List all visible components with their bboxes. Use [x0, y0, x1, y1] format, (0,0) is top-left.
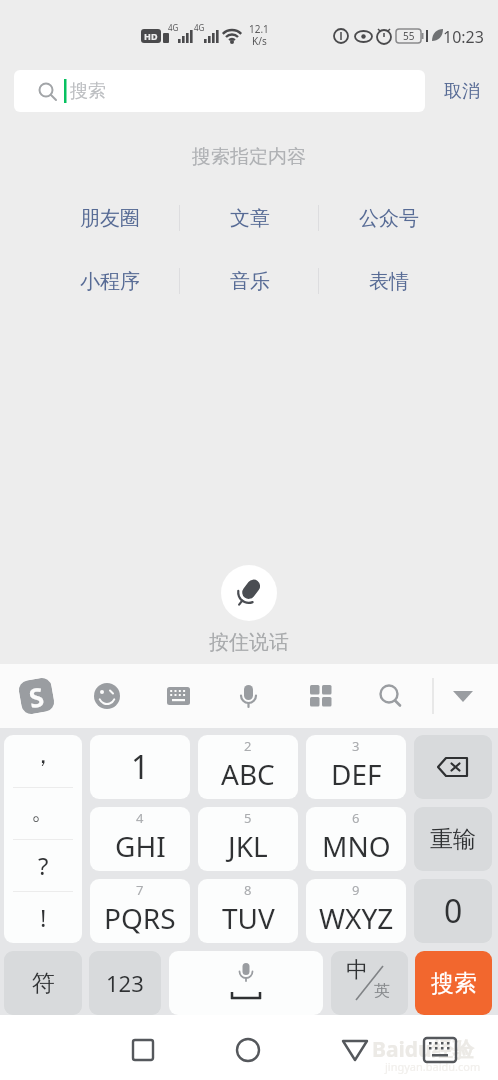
- button[interactable]: [228, 1025, 268, 1070]
- button[interactable]: 1: [90, 735, 190, 799]
- button[interactable]: 搜索: [14, 70, 425, 112]
- staticText: MNO: [322, 827, 391, 865]
- staticText: 7: [136, 881, 144, 899]
- staticText: 表情: [369, 269, 409, 294]
- staticText: 10:23: [443, 26, 484, 46]
- staticText: K/s: [252, 34, 267, 48]
- staticText: 英: [374, 981, 390, 1001]
- staticText: 符: [32, 969, 55, 998]
- staticText: 重输: [430, 825, 476, 854]
- staticText: 搜索指定内容: [192, 145, 306, 169]
- staticText: 123: [106, 968, 144, 998]
- button[interactable]: [414, 735, 492, 799]
- button[interactable]: 小程序: [40, 264, 180, 298]
- button[interactable]: 123: [89, 951, 161, 1015]
- button[interactable]: [221, 565, 277, 621]
- staticText: 文章: [230, 206, 270, 231]
- staticText: Baidu经验: [372, 1035, 474, 1064]
- staticText: 搜索: [70, 80, 106, 103]
- staticText: S: [26, 678, 47, 714]
- staticText: 3: [352, 737, 360, 755]
- staticText: TUV: [222, 899, 275, 937]
- staticText: HD: [144, 30, 158, 42]
- staticText: 4G: [194, 22, 205, 33]
- button[interactable]: 重输: [414, 807, 492, 871]
- button[interactable]: [169, 951, 323, 1015]
- staticText: 音乐: [230, 269, 270, 294]
- button[interactable]: S: [17, 676, 56, 716]
- staticText: 0: [444, 889, 463, 933]
- button[interactable]: 6: [306, 807, 406, 871]
- button[interactable]: 公众号: [319, 201, 458, 235]
- button[interactable]: 符: [4, 951, 82, 1015]
- staticText: 5: [244, 809, 252, 827]
- staticText: 按住说话: [209, 630, 289, 654]
- staticText: ?: [38, 849, 49, 882]
- button[interactable]: [335, 1025, 375, 1070]
- button[interactable]: 文章: [180, 201, 319, 235]
- staticText: 1: [131, 745, 150, 789]
- staticText: 8: [244, 881, 252, 899]
- button[interactable]: 4: [90, 807, 190, 871]
- button[interactable]: [123, 1025, 163, 1070]
- button[interactable]: 表情: [319, 264, 458, 298]
- staticText: 2: [244, 737, 252, 755]
- button[interactable]: 3: [306, 735, 406, 799]
- staticText: 9: [352, 881, 360, 899]
- staticText: ，: [31, 740, 55, 770]
- button[interactable]: [420, 1025, 460, 1070]
- staticText: WXYZ: [319, 899, 394, 937]
- staticText: jingyan.baidu.com: [385, 1059, 481, 1074]
- button[interactable]: 5: [198, 807, 298, 871]
- staticText: 。: [31, 796, 55, 826]
- staticText: DEF: [331, 755, 382, 793]
- button[interactable]: 搜索: [415, 951, 492, 1015]
- button[interactable]: 朋友圈: [40, 201, 180, 235]
- staticText: JKL: [228, 827, 268, 865]
- staticText: 中: [346, 956, 368, 984]
- button[interactable]: 音乐: [180, 264, 319, 298]
- staticText: 小程序: [80, 269, 140, 294]
- button[interactable]: ，: [4, 735, 82, 943]
- staticText: 12.1: [249, 22, 269, 36]
- button[interactable]: 2: [198, 735, 298, 799]
- staticText: 55: [403, 29, 415, 43]
- button[interactable]: 7: [90, 879, 190, 943]
- staticText: !: [40, 901, 47, 934]
- staticText: 4G: [168, 22, 179, 33]
- staticText: GHI: [115, 827, 166, 865]
- staticText: 朋友圈: [80, 206, 140, 231]
- button[interactable]: 取消: [432, 70, 492, 112]
- button[interactable]: 8: [198, 879, 298, 943]
- button[interactable]: 中: [331, 951, 408, 1015]
- staticText: 取消: [444, 80, 480, 103]
- staticText: 搜索: [431, 969, 477, 998]
- staticText: ABC: [221, 755, 275, 793]
- button[interactable]: 0: [414, 879, 492, 943]
- staticText: PQRS: [104, 899, 176, 937]
- staticText: 4: [136, 809, 144, 827]
- button[interactable]: 9: [306, 879, 406, 943]
- staticText: 6: [352, 809, 360, 827]
- staticText: 公众号: [359, 206, 419, 231]
